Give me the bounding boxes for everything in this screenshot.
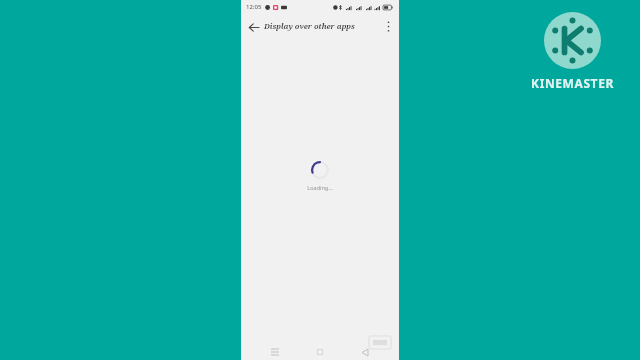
- staticText: Loading...: [307, 184, 333, 191]
- staticText: 12:05: [246, 3, 262, 11]
- button[interactable]: Back: [243, 17, 263, 37]
- button[interactable]: More options: [379, 17, 397, 35]
- button[interactable]: Back: [354, 344, 376, 360]
- button[interactable]: Recent apps: [264, 344, 286, 360]
- button[interactable]: Home: [309, 344, 331, 360]
- staticText: Display over other apps: [264, 21, 355, 31]
- staticText: KINEMASTER: [531, 75, 614, 91]
